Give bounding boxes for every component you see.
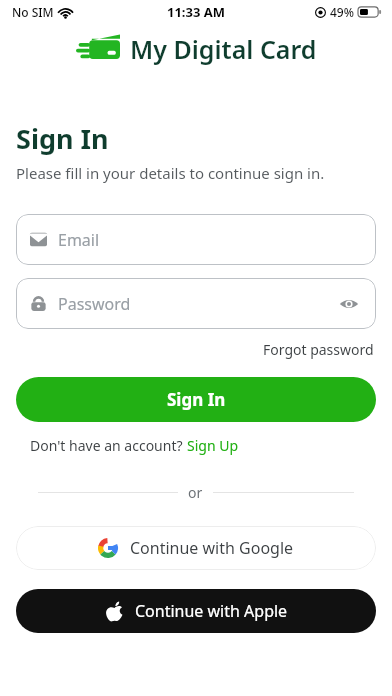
staticText: 11:33 AM	[167, 3, 226, 21]
staticText: Sign In	[16, 120, 109, 157]
button[interactable]: Sign Up	[187, 436, 239, 455]
staticText: My Digital Card	[130, 32, 317, 66]
button[interactable]: Email	[16, 214, 376, 265]
button[interactable]: Sign In	[16, 377, 376, 422]
staticText: Sign Up	[187, 436, 239, 455]
staticText: Continue with Google	[130, 537, 294, 559]
staticText: Please fill in your details to continue …	[16, 163, 325, 183]
staticText: Email	[58, 229, 100, 251]
staticText: Continue with Apple	[135, 600, 288, 622]
staticText: Password	[58, 293, 131, 315]
button[interactable]: Forgot password	[261, 338, 376, 361]
staticText: or	[188, 483, 203, 502]
staticText: Don't have an account?	[30, 436, 187, 455]
button[interactable]: Continue with Google	[16, 526, 376, 570]
staticText: No SIM	[12, 4, 54, 20]
button[interactable]: Show password	[336, 291, 362, 317]
button[interactable]: Password	[16, 278, 376, 329]
staticText: 49%	[330, 4, 354, 20]
button[interactable]: Continue with Apple	[16, 589, 376, 633]
staticText: Forgot password	[263, 340, 374, 359]
staticText: Sign In	[167, 388, 226, 411]
